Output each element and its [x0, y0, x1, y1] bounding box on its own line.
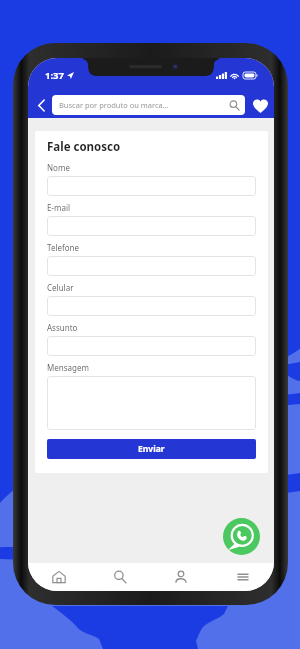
- staticText: Telefone: [47, 242, 80, 253]
- button[interactable]: [47, 216, 256, 236]
- button[interactable]: Search: [89, 563, 150, 591]
- staticText: 1:37: [45, 69, 64, 82]
- staticText: Nome: [47, 162, 70, 173]
- button[interactable]: [47, 296, 256, 316]
- staticText: Mensagem: [47, 362, 89, 373]
- button[interactable]: Buscar por produto ou marca...: [52, 95, 245, 115]
- staticText: Fale conosco: [47, 139, 121, 155]
- button[interactable]: [47, 376, 256, 430]
- staticText: Celular: [47, 282, 74, 293]
- button[interactable]: [47, 256, 256, 276]
- staticText: Assunto: [47, 322, 78, 333]
- button[interactable]: Account: [150, 563, 212, 591]
- button[interactable]: Menu: [212, 563, 274, 591]
- button[interactable]: WhatsApp: [223, 518, 260, 555]
- button[interactable]: Enviar: [47, 439, 256, 459]
- button[interactable]: Back: [33, 97, 50, 114]
- staticText: Enviar: [138, 443, 165, 455]
- button[interactable]: [47, 176, 256, 196]
- staticText: Buscar por produto ou marca...: [59, 100, 169, 110]
- staticText: E-mail: [47, 202, 71, 213]
- button[interactable]: Home: [28, 563, 89, 591]
- button[interactable]: Favorites: [251, 96, 270, 115]
- button[interactable]: [47, 336, 256, 356]
